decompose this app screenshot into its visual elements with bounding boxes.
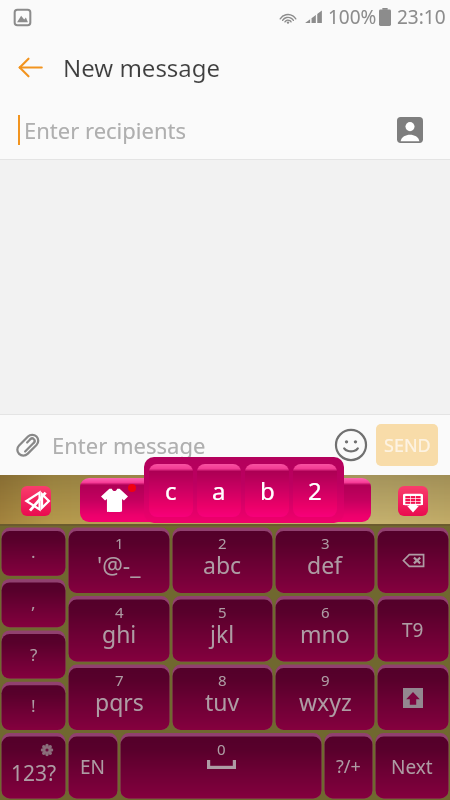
staticText: 9 — [321, 670, 330, 690]
staticText: ! — [31, 694, 36, 717]
button[interactable]: 2 — [171, 526, 274, 595]
button[interactable]: Space — [119, 732, 323, 800]
button[interactable]: 2 — [293, 464, 337, 517]
staticText: abc — [203, 549, 242, 580]
staticText: 23:10 — [397, 4, 446, 30]
button[interactable]: 9 — [274, 663, 376, 732]
staticText: pqrs — [95, 686, 144, 717]
staticText: wxyz — [299, 686, 352, 717]
button[interactable]: Backspace — [376, 526, 450, 595]
staticText: Next — [391, 754, 433, 780]
staticText: EN — [80, 754, 106, 780]
staticText: , — [31, 591, 36, 614]
staticText: 100% — [328, 4, 377, 30]
button[interactable]: T9 — [376, 595, 450, 664]
staticText: 2 — [218, 533, 227, 553]
button[interactable]: , — [0, 577, 67, 628]
staticText: ? — [30, 643, 38, 666]
button[interactable]: Theme — [101, 488, 128, 512]
button[interactable]: Choose contact — [388, 108, 432, 152]
staticText: '@-_ — [97, 549, 141, 580]
staticText: mno — [300, 618, 350, 649]
button[interactable]: Back — [6, 43, 54, 91]
staticText: ghi — [102, 618, 137, 649]
button[interactable]: c — [149, 464, 193, 517]
button[interactable]: 6 — [274, 595, 376, 664]
staticText: 5 — [218, 602, 227, 622]
button[interactable]: Shift — [376, 663, 450, 732]
staticText: . — [31, 540, 36, 563]
button[interactable]: ? — [0, 629, 67, 680]
button[interactable]: Attach file — [6, 423, 50, 467]
staticText: Enter message — [52, 430, 206, 460]
button[interactable]: 7 — [67, 663, 171, 732]
button[interactable]: Next — [374, 732, 450, 800]
button[interactable]: ! — [0, 680, 67, 731]
staticText: Enter recipients — [24, 115, 186, 145]
staticText: b — [260, 474, 275, 507]
staticText: def — [307, 549, 343, 580]
staticText: 8 — [218, 670, 227, 690]
button[interactable]: 1 — [67, 526, 171, 595]
button[interactable]: 4 — [67, 595, 171, 664]
staticText: T9 — [402, 617, 424, 643]
button[interactable]: 123? — [0, 732, 67, 800]
staticText: 0 — [217, 739, 226, 759]
staticText: jkl — [210, 618, 235, 649]
button[interactable]: SEND — [376, 424, 438, 466]
staticText: 3 — [321, 533, 330, 553]
button[interactable]: 5 — [171, 595, 274, 664]
button[interactable]: ?/+ — [323, 732, 374, 800]
staticText: a — [212, 474, 226, 507]
button[interactable]: b — [245, 464, 289, 517]
staticText: 7 — [115, 670, 124, 690]
button[interactable]: a — [197, 464, 241, 517]
staticText: 2 — [308, 474, 322, 507]
staticText: tuv — [205, 686, 240, 717]
button[interactable]: 3 — [274, 526, 376, 595]
button[interactable]: Hide keyboard — [398, 486, 428, 516]
staticText: c — [165, 474, 177, 507]
button[interactable]: . — [0, 526, 67, 577]
button[interactable]: 8 — [171, 663, 274, 732]
staticText: 4 — [115, 602, 124, 622]
button[interactable]: Emoji — [330, 424, 372, 466]
button[interactable]: EN — [67, 732, 119, 800]
staticText: ?/+ — [336, 754, 361, 779]
staticText: New message — [63, 51, 221, 84]
staticText: SEND — [384, 433, 431, 458]
button[interactable]: Sound off — [21, 486, 51, 516]
staticText: 6 — [321, 602, 330, 622]
staticText: 1 — [115, 533, 124, 553]
staticText: 123? — [11, 759, 57, 788]
